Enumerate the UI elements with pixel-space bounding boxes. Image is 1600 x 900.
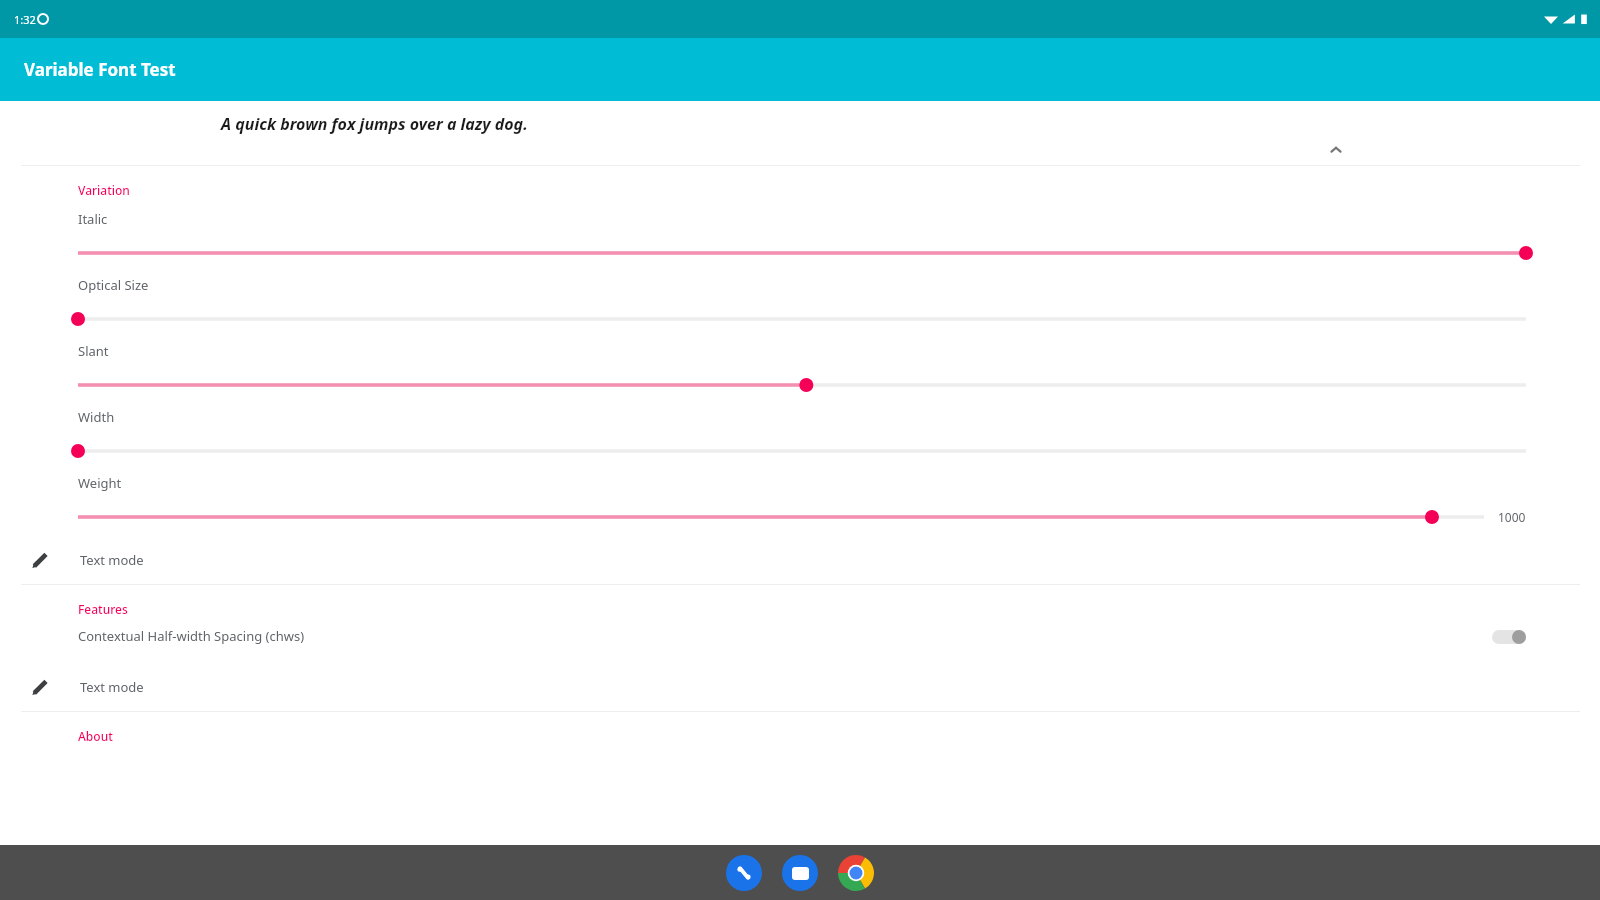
staticText: Width	[78, 408, 115, 426]
button[interactable]: Messages	[782, 855, 818, 891]
button[interactable]: Collapse	[1322, 136, 1350, 164]
staticText: Contextual Half-width Spacing (chws)	[78, 627, 305, 645]
staticText: A quick brown fox jumps over a lazy dog.	[221, 113, 528, 135]
staticText: Text mode	[80, 678, 144, 696]
staticText: Variation	[78, 182, 130, 198]
button[interactable]: Italic	[0, 200, 1600, 266]
staticText: Italic	[78, 210, 108, 228]
staticText: Text mode	[80, 551, 144, 569]
staticText: About	[78, 728, 113, 744]
staticText: 1:32	[14, 12, 36, 27]
button[interactable]: Phone	[726, 855, 762, 891]
staticText: Optical Size	[78, 276, 149, 294]
staticText: Weight	[78, 474, 122, 492]
staticText: Variable Font Test	[24, 58, 176, 81]
button[interactable]: Slant	[0, 332, 1600, 398]
button[interactable]: Contextual Half-width Spacing (chws)	[0, 619, 1600, 653]
button[interactable]: Width	[0, 398, 1600, 464]
button[interactable]: Chrome	[838, 855, 874, 891]
button[interactable]: Text mode	[0, 663, 1600, 711]
staticText: 1000	[1498, 509, 1526, 525]
staticText: Slant	[78, 342, 109, 360]
button[interactable]: Weight	[0, 464, 1600, 530]
button[interactable]: Optical Size	[0, 266, 1600, 332]
button[interactable]: Text mode	[0, 536, 1600, 584]
staticText: Features	[78, 601, 128, 617]
